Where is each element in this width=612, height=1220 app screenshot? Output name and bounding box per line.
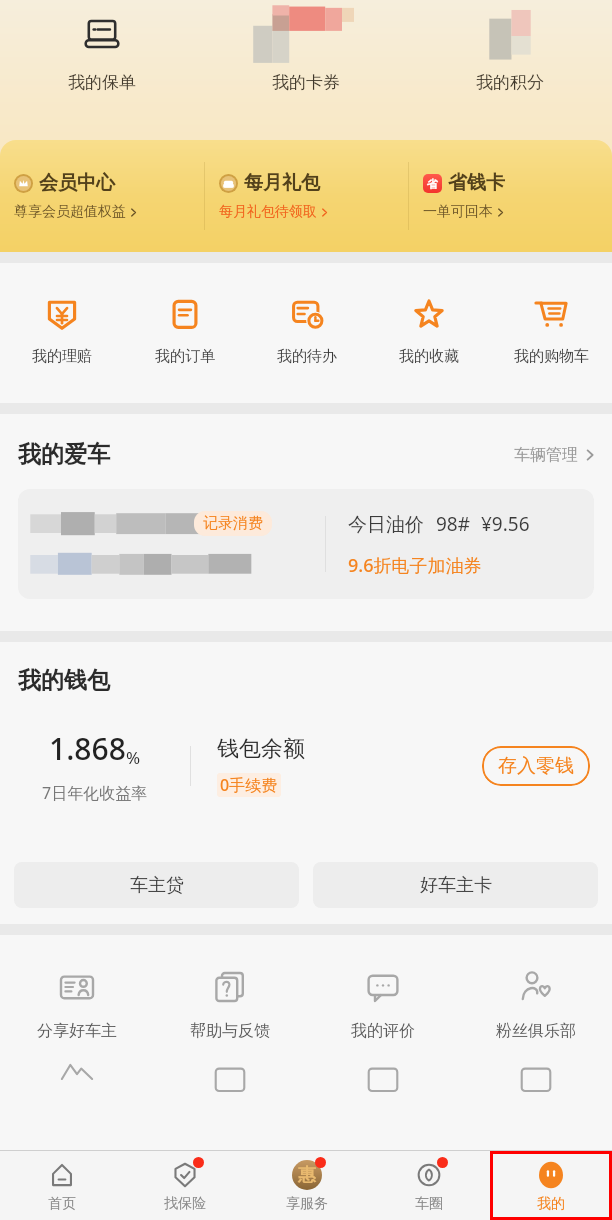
staticText: 我的钱包 (18, 666, 110, 695)
staticText: 我的 (537, 1195, 565, 1213)
button[interactable]: 我的购物车 (490, 291, 612, 366)
button[interactable]: 钱包余额 (217, 735, 391, 797)
staticText: 每月礼包 (244, 171, 320, 195)
staticText: 帮助与反馈 (190, 1021, 270, 1041)
button[interactable]: 我的订单 (123, 291, 246, 366)
staticText: 7日年化收益率 (42, 782, 148, 804)
button[interactable]: 会员中心 (0, 140, 204, 252)
staticText: 我的积分 (476, 72, 544, 93)
staticText: 粉丝俱乐部 (496, 1021, 576, 1041)
staticText: 今日油价 (348, 513, 424, 537)
button[interactable]: 帮助与反馈 (153, 965, 306, 1041)
staticText: 我的保单 (68, 72, 136, 93)
button[interactable]: 我的待办 (246, 291, 368, 366)
staticText: 找保险 (164, 1195, 206, 1213)
button[interactable]: 车圈 (368, 1151, 490, 1220)
button[interactable]: 找保险 (123, 1151, 246, 1220)
staticText: 好车主卡 (420, 874, 492, 897)
button[interactable] (306, 1063, 459, 1079)
button[interactable]: 车主贷 (14, 862, 299, 908)
button[interactable]: 我的理赔 (0, 291, 123, 366)
staticText: 98# (436, 511, 471, 537)
button[interactable]: 省 (409, 140, 612, 252)
staticText: 车辆管理 (514, 445, 578, 465)
staticText: 钱包余额 (217, 735, 305, 763)
staticText: 我的卡券 (272, 72, 340, 93)
other: 首页 (48, 1161, 76, 1189)
button[interactable] (459, 1063, 612, 1079)
button[interactable]: 分享好车主 (0, 965, 153, 1041)
staticText: 我的购物车 (514, 347, 589, 366)
button[interactable]: 我的爱车 (18, 440, 596, 469)
staticText: 我的订单 (155, 347, 215, 366)
staticText: 我的理赔 (32, 347, 92, 366)
staticText: 9.6折电子加油券 (348, 553, 482, 578)
other: 我的 (536, 1160, 566, 1190)
staticText: 我的收藏 (399, 347, 459, 366)
staticText: 省 (427, 177, 438, 191)
button[interactable]: 好车主卡 (313, 862, 598, 908)
staticText: 惠 (298, 1164, 316, 1187)
button[interactable]: 存入零钱 (482, 746, 590, 786)
button[interactable]: 我的评价 (306, 965, 459, 1041)
staticText: 我的评价 (351, 1021, 415, 1041)
staticText: 0手续费 (220, 774, 278, 796)
staticText: 会员中心 (39, 171, 115, 195)
staticText: 我的待办 (277, 347, 337, 366)
button[interactable]: 享服务 (246, 1151, 368, 1220)
button[interactable]: 我的卡券 (204, 0, 408, 125)
button[interactable] (153, 1063, 306, 1079)
button[interactable]: 我的积分 (408, 0, 612, 125)
staticText: 存入零钱 (498, 754, 574, 778)
button[interactable]: 记录消费 (18, 489, 594, 599)
button[interactable]: 我的保单 (0, 0, 204, 125)
button[interactable]: 我的收藏 (368, 291, 490, 366)
button[interactable] (0, 1063, 153, 1079)
staticText: 省钱卡 (448, 171, 505, 195)
staticText: 享服务 (286, 1195, 328, 1213)
staticText: 每月礼包待领取 (219, 203, 317, 221)
staticText: 记录消费 (203, 514, 263, 533)
staticText: 车圈 (415, 1195, 443, 1213)
staticText: 尊享会员超值权益 (14, 203, 126, 221)
staticText: 一单可回本 (423, 203, 493, 221)
other: 享服务 (292, 1160, 322, 1190)
button[interactable]: 每月礼包 (205, 140, 408, 252)
other: 找保险 (171, 1161, 199, 1189)
other: 车圈 (415, 1161, 443, 1189)
button[interactable]: 1.868 (0, 728, 190, 804)
button[interactable]: 首页 (0, 1151, 123, 1220)
staticText: 1.868 (49, 728, 126, 769)
button[interactable]: 我的 (490, 1151, 612, 1220)
staticText: % (126, 746, 141, 769)
staticText: 车主贷 (130, 874, 184, 897)
staticText: 我的爱车 (18, 440, 110, 469)
button[interactable]: 粉丝俱乐部 (459, 965, 612, 1041)
staticText: 分享好车主 (37, 1021, 117, 1041)
staticText: 首页 (48, 1195, 76, 1213)
staticText: ¥9.56 (481, 511, 530, 537)
